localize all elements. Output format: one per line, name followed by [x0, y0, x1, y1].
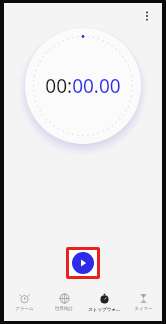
button[interactable]: アラーム	[4, 287, 44, 317]
button[interactable]: More options	[137, 6, 157, 26]
button[interactable]: ストップウォ…	[84, 287, 124, 317]
button[interactable]: タイマー	[124, 287, 162, 317]
staticText: 世界時計	[55, 306, 73, 312]
button[interactable]: 00:00.00	[45, 73, 121, 99]
staticText: アラーム	[15, 306, 34, 312]
staticText: 00:00.00	[45, 73, 121, 99]
button[interactable]: Start	[69, 250, 97, 276]
staticText: ストップウォ…	[88, 306, 120, 312]
staticText: タイマー	[134, 306, 153, 312]
button[interactable]: 世界時計	[44, 287, 84, 317]
